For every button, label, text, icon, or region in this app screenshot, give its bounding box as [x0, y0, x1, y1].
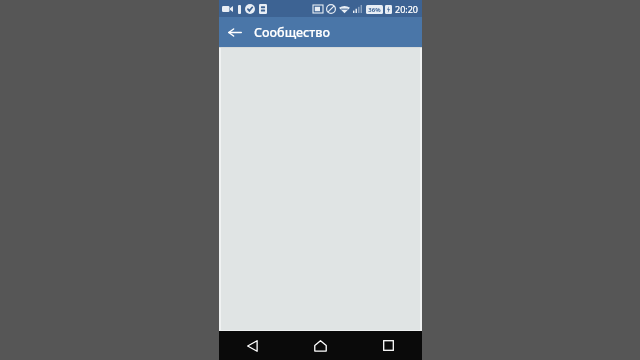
button[interactable]: Recent apps — [354, 331, 422, 360]
staticText: 36% — [368, 6, 381, 14]
staticText: Сообщество — [254, 24, 330, 41]
button[interactable]: Back — [219, 17, 249, 47]
button[interactable]: Home — [286, 331, 354, 360]
button[interactable]: Back — [219, 331, 286, 360]
staticText: 20:20 — [395, 3, 419, 15]
